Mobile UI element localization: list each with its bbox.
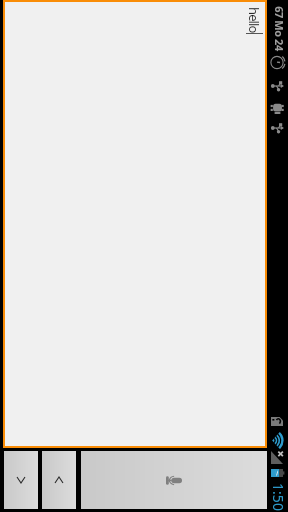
button[interactable]: Voice input (81, 451, 267, 509)
button[interactable]: Scroll down (4, 451, 38, 509)
button[interactable]: Scroll up (42, 451, 76, 509)
staticText: 1:50 (269, 483, 288, 511)
button[interactable]: hello (5, 2, 265, 446)
staticText: 67 Mo 24 (272, 6, 287, 51)
staticText: hello (245, 7, 263, 33)
